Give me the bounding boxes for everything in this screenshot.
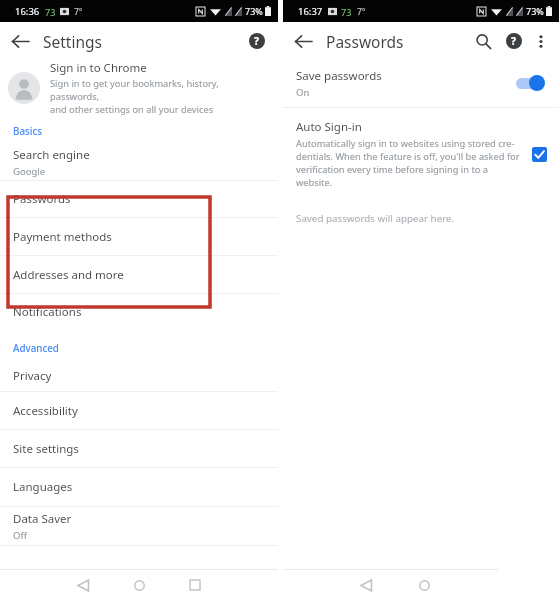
button[interactable]: Payment methods bbox=[0, 218, 278, 255]
staticText: Advanced bbox=[13, 342, 59, 355]
staticText: Languages bbox=[13, 479, 73, 495]
staticText: Accessibility bbox=[13, 403, 78, 419]
button[interactable]: Search bbox=[470, 28, 496, 54]
staticText: Notifications bbox=[13, 304, 82, 320]
button[interactable]: Site settings bbox=[0, 430, 278, 467]
button[interactable]: Auto Sign-in bbox=[283, 108, 559, 200]
button[interactable]: Back bbox=[70, 572, 96, 598]
staticText: 16:37 bbox=[298, 5, 323, 18]
staticText: 73% bbox=[245, 5, 263, 17]
staticText: Sign in to get your bookmarks, history, … bbox=[50, 77, 266, 116]
button[interactable]: Navigate up bbox=[289, 27, 317, 55]
button[interactable]: Addresses and more bbox=[0, 256, 278, 293]
button[interactable]: Notifications bbox=[0, 294, 278, 330]
staticText: 16:36 bbox=[15, 5, 40, 18]
staticText: Sign in to Chrome bbox=[50, 60, 147, 76]
button[interactable]: Back bbox=[353, 572, 379, 598]
staticText: Settings bbox=[43, 31, 102, 52]
button[interactable]: Sign in to Chrome bbox=[0, 59, 278, 117]
button[interactable]: Passwords bbox=[0, 181, 278, 217]
button[interactable]: Languages bbox=[0, 468, 278, 506]
staticText: Addresses and more bbox=[13, 267, 124, 283]
staticText: 73 bbox=[45, 6, 56, 18]
button[interactable]: More options bbox=[529, 29, 553, 53]
staticText: Save passwords bbox=[296, 68, 382, 84]
button[interactable]: Privacy bbox=[0, 360, 278, 391]
button[interactable]: Home bbox=[411, 572, 437, 598]
staticText: Search engine bbox=[13, 147, 90, 163]
staticText: Site settings bbox=[13, 441, 79, 457]
staticText: Auto Sign-in bbox=[296, 119, 362, 135]
button[interactable]: Navigate up bbox=[6, 27, 34, 55]
staticText: Passwords bbox=[13, 191, 71, 207]
button[interactable]: Recents bbox=[182, 572, 208, 598]
button[interactable]: Accessibility bbox=[0, 392, 278, 429]
button[interactable]: Help bbox=[244, 28, 270, 54]
button[interactable]: Search engine bbox=[0, 144, 278, 180]
staticText: ? bbox=[511, 34, 517, 48]
staticText: 73% bbox=[526, 5, 544, 17]
staticText: Basics bbox=[13, 125, 42, 138]
staticText: Privacy bbox=[13, 368, 52, 384]
staticText: Saved passwords will appear here. bbox=[296, 212, 455, 225]
staticText: Automatically sign in to websites using … bbox=[296, 137, 522, 189]
staticText: Payment methods bbox=[13, 229, 112, 245]
button[interactable]: Home bbox=[126, 572, 152, 598]
staticText: On bbox=[296, 86, 310, 99]
button[interactable]: Data Saver bbox=[0, 507, 278, 545]
staticText: ? bbox=[254, 34, 260, 48]
staticText: 73 bbox=[341, 6, 352, 18]
staticText: 7° bbox=[357, 6, 366, 18]
staticText: Off bbox=[13, 529, 27, 542]
staticText: Passwords bbox=[326, 31, 404, 52]
button[interactable]: Save passwords bbox=[283, 59, 559, 107]
staticText: Data Saver bbox=[13, 511, 72, 527]
button[interactable]: Help bbox=[501, 28, 527, 54]
staticText: 7° bbox=[74, 6, 83, 18]
staticText: Google bbox=[13, 165, 46, 178]
